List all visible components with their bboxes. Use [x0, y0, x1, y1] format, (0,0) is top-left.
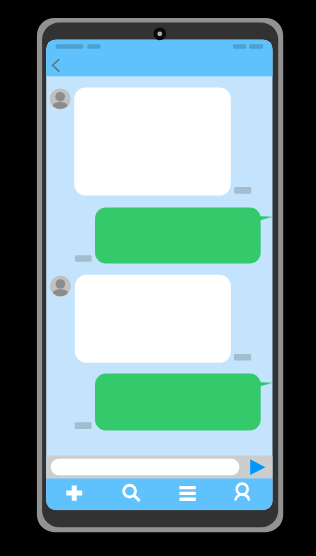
- button[interactable]: Profile: [216, 478, 273, 510]
- button[interactable]: Message input: [51, 459, 240, 476]
- button[interactable]: Send: [246, 456, 269, 478]
- button[interactable]: [95, 208, 261, 264]
- button[interactable]: Search: [102, 478, 159, 510]
- button[interactable]: Compose: [46, 478, 102, 510]
- button[interactable]: Menu: [159, 478, 216, 510]
- button[interactable]: [75, 275, 231, 363]
- button[interactable]: [95, 374, 261, 431]
- button[interactable]: [74, 87, 231, 195]
- button[interactable]: Back: [48, 51, 74, 77]
